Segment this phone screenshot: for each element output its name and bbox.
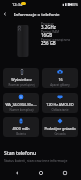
staticText: 16GB (41, 32, 53, 38)
button[interactable]: Wyświetlacz (3, 68, 39, 88)
staticText: 12:34 (12, 2, 23, 7)
staticText: Status baterii, stan oraz inne informacj… (4, 158, 68, 163)
staticText: Wyświetlacz (11, 77, 32, 82)
button[interactable]: Podwójne gniazdo (42, 117, 78, 137)
button[interactable]: 120 Hz AMOLED (42, 93, 78, 113)
staticText: 80% (71, 2, 79, 7)
button[interactable]: WA_34.0304.30x.14S (3, 93, 39, 113)
staticText: Procesor (41, 22, 54, 26)
staticText: Pamięć RAM (41, 30, 60, 34)
staticText: Pamięć wewnętrzna (41, 38, 71, 42)
staticText: Rozmiar przekątnej (8, 83, 35, 87)
staticText: Gniazda (54, 132, 66, 136)
button[interactable]: Stan telefonu (4, 150, 81, 163)
button[interactable]: 16 (42, 68, 78, 88)
button[interactable]: 4500 mAh (3, 117, 39, 137)
staticText: WA_34.0304.30x.14S (5, 102, 37, 107)
staticText: Aparat główny (50, 83, 70, 87)
button[interactable]: Ekran główny (36, 166, 45, 180)
staticText: Stan telefonu (4, 150, 37, 157)
button[interactable]: Wstecz (0, 8, 9, 20)
staticText: Bateria (16, 132, 26, 136)
staticText: 4500 mAh (12, 126, 30, 131)
button[interactable]: Wstecz (12, 166, 21, 180)
staticText: 256 GB (41, 40, 56, 46)
staticText: 3.2GHz (41, 24, 56, 30)
staticText: Podwójne gniazdo (44, 126, 76, 131)
staticText: Odświeżanie (51, 108, 69, 112)
staticText: 120 Hz AMOLED (46, 102, 74, 107)
staticText: Informacje o telefonie (14, 11, 60, 17)
staticText: 16 (58, 77, 63, 82)
staticText: Numer kompilacji (9, 108, 34, 112)
button[interactable]: Ostatnie (60, 166, 69, 180)
